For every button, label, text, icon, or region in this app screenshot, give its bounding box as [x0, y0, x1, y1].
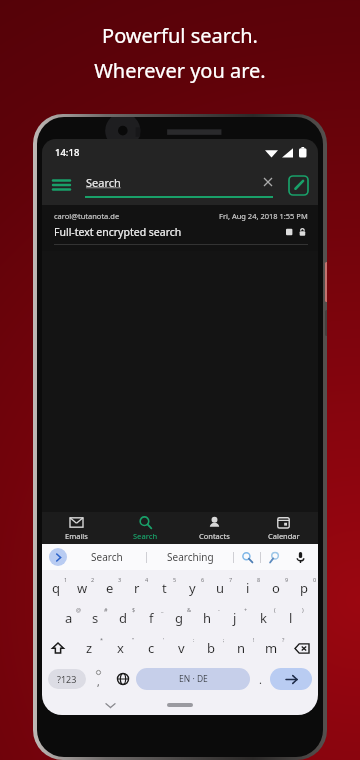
button[interactable]: Comma: [86, 663, 110, 695]
button[interactable]: Voice input: [287, 544, 313, 570]
button[interactable]: carol@tutanota.de: [42, 205, 318, 251]
staticText: 5: [173, 576, 177, 583]
button[interactable]: y: [178, 573, 206, 603]
staticText: 0: [313, 576, 317, 583]
staticText: 6: [201, 576, 205, 583]
button[interactable]: n: [226, 633, 256, 663]
button[interactable]: c: [136, 633, 166, 663]
button[interactable]: Switch language: [110, 663, 136, 695]
button[interactable]: u: [206, 573, 234, 603]
staticText: f: [149, 609, 154, 627]
staticText: 1: [64, 576, 68, 583]
staticText: Search: [91, 550, 123, 564]
button[interactable]: o: [262, 573, 290, 603]
staticText: ;: [223, 636, 225, 643]
staticText: !: [253, 636, 255, 643]
button[interactable]: Expand suggestions: [49, 548, 67, 566]
staticText: Search: [86, 175, 121, 190]
button[interactable]: l: [277, 603, 305, 633]
button[interactable]: a: [55, 603, 82, 633]
staticText: ,: [97, 675, 100, 689]
staticText: s: [92, 609, 99, 627]
staticText: a: [65, 609, 73, 627]
staticText: carol@tutanota.de: [54, 211, 120, 221]
staticText: ?: [282, 636, 285, 643]
button[interactable]: Search: [67, 544, 146, 570]
staticText: Emails: [65, 531, 88, 541]
button[interactable]: s: [82, 603, 109, 633]
staticText: i: [246, 579, 250, 597]
staticText: y: [189, 579, 196, 597]
staticText: t: [162, 579, 167, 597]
button[interactable]: g: [165, 603, 193, 633]
staticText: g: [175, 609, 183, 627]
staticText: c: [148, 639, 155, 657]
button[interactable]: z: [74, 633, 105, 663]
button[interactable]: Emails: [42, 512, 111, 544]
staticText: w: [77, 579, 88, 597]
staticText: @: [76, 606, 81, 613]
staticText: _: [161, 606, 164, 613]
button[interactable]: t: [150, 573, 178, 603]
staticText: e: [106, 579, 114, 597]
button[interactable]: f: [137, 603, 165, 633]
button[interactable]: w: [69, 573, 96, 603]
button[interactable]: h: [193, 603, 221, 633]
staticText: #: [104, 606, 108, 613]
button[interactable]: Enter: [270, 668, 312, 690]
button[interactable]: b: [196, 633, 226, 663]
staticText: Powerful search.: [102, 22, 258, 49]
button[interactable]: e: [96, 573, 123, 603]
staticText: 7: [229, 576, 233, 583]
button[interactable]: Searching: [147, 544, 233, 570]
staticText: ": [132, 636, 135, 643]
button[interactable]: Clear search: [258, 172, 278, 192]
staticText: o: [272, 579, 280, 597]
staticText: 3: [118, 576, 122, 583]
button[interactable]: Open navigation menu: [42, 166, 80, 204]
button[interactable]: r: [123, 573, 150, 603]
staticText: +: [244, 606, 248, 613]
staticText: Calendar: [268, 531, 300, 541]
button[interactable]: x: [105, 633, 136, 663]
button[interactable]: EN · DE: [136, 668, 250, 690]
button[interactable]: Compose new email: [278, 165, 318, 205]
button[interactable]: i: [234, 573, 262, 603]
staticText: k: [260, 609, 267, 627]
button[interactable]: m: [256, 633, 286, 663]
button[interactable]: Search: [111, 512, 180, 544]
staticText: ): [302, 606, 304, 613]
button[interactable]: j: [221, 603, 249, 633]
button[interactable]: k: [249, 603, 277, 633]
staticText: h: [203, 609, 212, 627]
button[interactable]: Backspace: [286, 633, 318, 663]
button[interactable]: Contacts: [180, 512, 249, 544]
button[interactable]: Search emoji: [234, 544, 260, 570]
staticText: &: [187, 606, 192, 613]
staticText: Wherever you are.: [94, 57, 266, 84]
staticText: d: [119, 609, 127, 627]
staticText: q: [52, 579, 60, 597]
button[interactable]: v: [166, 633, 196, 663]
staticText: -: [218, 606, 220, 613]
button[interactable]: Calendar: [249, 512, 318, 544]
button[interactable]: Search: [80, 172, 278, 198]
staticText: 2: [91, 576, 95, 583]
button[interactable]: d: [109, 603, 137, 633]
staticText: b: [207, 639, 215, 657]
button[interactable]: Period: [250, 663, 270, 695]
staticText: $: [132, 606, 136, 613]
staticText: (: [274, 606, 276, 613]
button[interactable]: p: [290, 573, 318, 603]
button[interactable]: ?123: [48, 669, 86, 689]
staticText: Fri, Aug 24, 2018 1:55 PM: [219, 211, 308, 221]
staticText: v: [178, 639, 185, 657]
staticText: j: [233, 609, 237, 627]
staticText: EN · DE: [179, 673, 208, 685]
staticText: 8: [257, 576, 261, 583]
button[interactable]: q: [42, 573, 69, 603]
button[interactable]: Magnifier emoji: [261, 544, 287, 570]
button[interactable]: Shift: [42, 633, 74, 663]
staticText: Contacts: [199, 531, 230, 541]
staticText: z: [86, 639, 93, 657]
